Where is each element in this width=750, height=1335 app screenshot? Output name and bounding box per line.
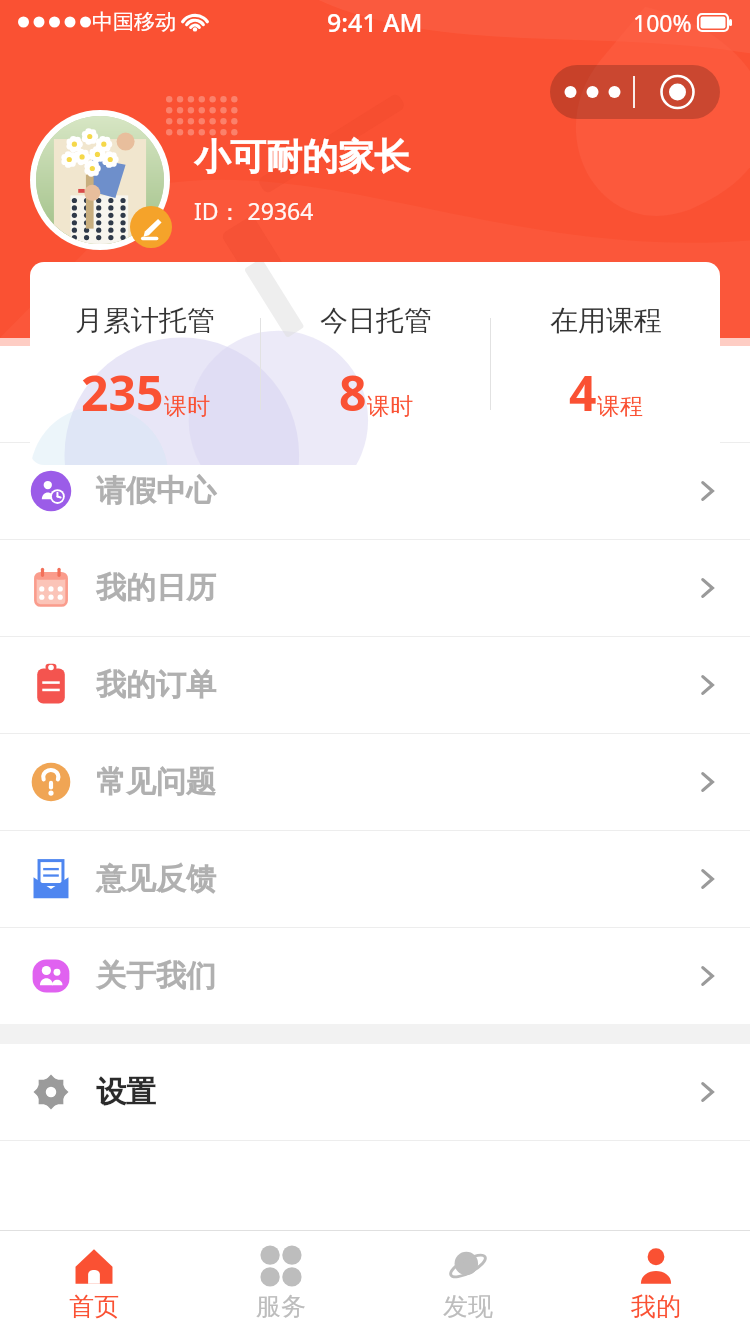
button[interactable]: 首页	[0, 1231, 187, 1335]
button[interactable]: 关于我们	[0, 928, 750, 1024]
button[interactable]: 发现	[374, 1231, 562, 1335]
staticText: 月累计托管	[75, 303, 215, 338]
staticText: ID： 29364	[194, 195, 314, 226]
staticText: 235	[81, 360, 164, 425]
button[interactable]: 我的日历	[0, 540, 750, 636]
staticText: 课时	[367, 392, 413, 421]
staticText: 请假中心	[96, 472, 216, 510]
staticText: 服务	[256, 1291, 306, 1322]
staticText: 关于我们	[96, 957, 216, 995]
button[interactable]: 月累计托管	[30, 303, 260, 425]
staticText: 我的日历	[96, 569, 216, 607]
staticText: 常见问题	[96, 763, 216, 801]
staticText: 100%	[633, 7, 692, 38]
staticText: 9:41 AM	[327, 5, 423, 39]
staticText: 发现	[443, 1291, 493, 1322]
staticText: 首页	[69, 1291, 119, 1322]
staticText: 我的订单	[96, 666, 216, 704]
staticText: 意见反馈	[96, 860, 216, 898]
staticText: 亲情号管理	[96, 375, 246, 413]
button[interactable]: 常见问题	[0, 734, 750, 830]
button[interactable]: Edit profile	[130, 206, 172, 248]
button[interactable]: 在用课程	[491, 303, 720, 425]
button[interactable]: 意见反馈	[0, 831, 750, 927]
button[interactable]: 亲情号管理	[0, 346, 750, 442]
staticText: 今日托管	[320, 303, 432, 338]
staticText: 4	[569, 360, 597, 425]
button[interactable]: Profile avatar	[30, 110, 170, 250]
staticText: 在用课程	[550, 303, 662, 338]
staticText: 课时	[164, 392, 210, 421]
button[interactable]: 设置	[0, 1044, 750, 1140]
staticText: 课程	[597, 392, 643, 421]
staticText: 8	[339, 360, 367, 425]
button[interactable]: 服务	[187, 1231, 374, 1335]
button[interactable]: More and close	[550, 65, 720, 119]
staticText: 中国移动	[92, 9, 176, 35]
staticText: 小可耐的家长	[194, 134, 410, 179]
button[interactable]: 我的订单	[0, 637, 750, 733]
button[interactable]: 我的	[562, 1231, 750, 1335]
button[interactable]: 请假中心	[0, 443, 750, 539]
staticText: 我的	[631, 1291, 681, 1322]
button[interactable]: 今日托管	[261, 303, 490, 425]
staticText: 设置	[96, 1073, 156, 1111]
